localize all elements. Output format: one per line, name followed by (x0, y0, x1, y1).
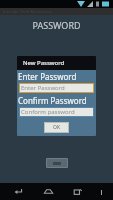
staticText: Enter Password (18, 71, 77, 82)
button[interactable]: OK (44, 122, 69, 133)
button[interactable]: Menu (96, 187, 106, 197)
staticText: New Password (23, 59, 65, 67)
staticText: Intruder Theft Monitoring (3, 9, 52, 14)
button[interactable]: Conform password (19, 107, 94, 117)
staticText: PASSWORD (32, 19, 81, 31)
staticText: Enter Password (21, 84, 65, 92)
button[interactable]: Set password (46, 158, 68, 168)
button[interactable]: Home (37, 183, 59, 200)
button[interactable]: Back (7, 183, 29, 200)
button[interactable]: Recent apps (66, 183, 88, 200)
button[interactable]: Enter Password (19, 83, 94, 93)
staticText: OK (53, 124, 61, 131)
staticText: Conform password (21, 108, 75, 116)
staticText: Confirm Password (18, 95, 87, 106)
